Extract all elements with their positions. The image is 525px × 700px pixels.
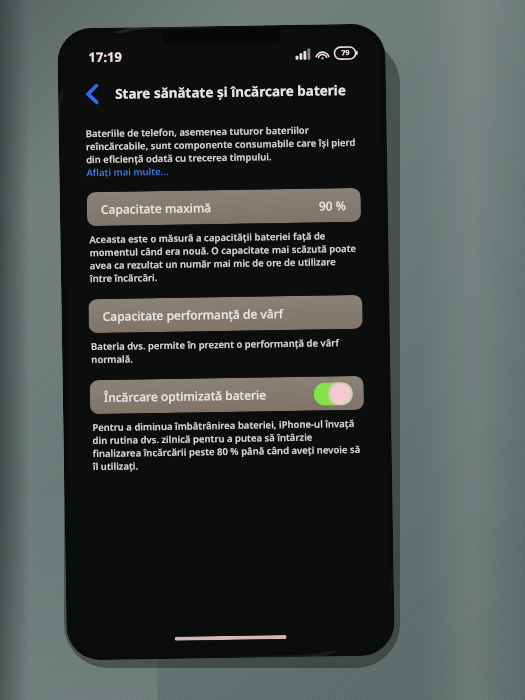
staticText: Bateriile de telefon, asemenea tuturor b… bbox=[86, 123, 360, 166]
button[interactable]: Aflați mai multe... bbox=[86, 165, 169, 179]
staticText: 90 % bbox=[319, 197, 347, 213]
staticText: Capacitate maximă bbox=[101, 199, 212, 217]
staticText: Pentru a diminua îmbătrânirea bateriei, … bbox=[92, 417, 363, 473]
staticText: Bateria dvs. permite în prezent o perfor… bbox=[91, 336, 361, 366]
button[interactable]: Încărcare optimizată baterie bbox=[90, 376, 364, 414]
button[interactable]: Back bbox=[75, 77, 109, 111]
staticText: Capacitate performanță de vârf bbox=[102, 305, 284, 324]
button[interactable]: Capacitate maximă bbox=[87, 188, 361, 226]
staticText: Stare sănătate și încărcare baterie bbox=[115, 81, 346, 103]
staticText: 79 bbox=[341, 48, 351, 58]
staticText: Aflați mai multe... bbox=[86, 165, 169, 179]
staticText: 17:19 bbox=[88, 48, 123, 66]
staticText: Aceasta este o măsură a capacității bate… bbox=[89, 229, 360, 285]
staticText: Încărcare optimizată baterie bbox=[104, 386, 267, 405]
button[interactable]: Optimised battery charging toggle bbox=[314, 382, 353, 406]
button[interactable]: Capacitate performanță de vârf bbox=[88, 295, 363, 333]
